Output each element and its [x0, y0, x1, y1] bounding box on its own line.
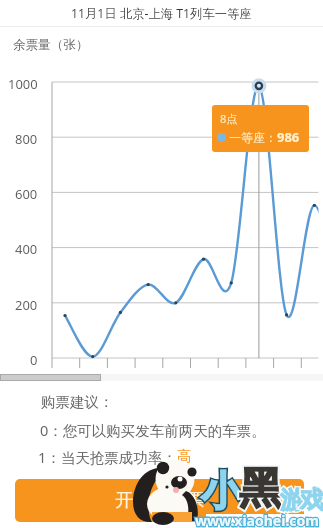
- staticText: 200: [15, 296, 38, 314]
- staticText: 0: [30, 351, 38, 369]
- staticText: 1：当天抢票成功率：: [38, 447, 177, 467]
- staticText: 800: [15, 130, 38, 148]
- button[interactable]: 11月1日 北京-上海 T1列车一等座: [0, 0, 323, 26]
- staticText: 戏: [300, 485, 323, 515]
- staticText: 600: [15, 185, 38, 203]
- staticText: 8点: [220, 111, 238, 126]
- staticText: 游: [280, 485, 304, 515]
- staticText: 0：您可以购买发车前两天的车票。: [40, 420, 266, 440]
- staticText: 黑: [239, 462, 282, 516]
- staticText: 高: [177, 447, 192, 465]
- staticText: 1000: [8, 75, 38, 93]
- staticText: 购票建议：: [41, 393, 114, 411]
- staticText: 余票量（张）: [13, 37, 89, 53]
- staticText: 11月1日 北京-上海 T1列车一等座: [71, 5, 252, 22]
- button[interactable]: 开启云抢票: [15, 479, 304, 522]
- staticText: 一等座：: [229, 130, 277, 145]
- staticText: 小: [201, 466, 241, 516]
- staticText: 开启云抢票: [115, 489, 205, 512]
- staticText: www.xiaohei.com: [195, 511, 319, 528]
- staticText: 黑: [239, 462, 282, 516]
- staticText: 游: [280, 485, 304, 515]
- staticText: 小: [201, 466, 241, 516]
- staticText: 戏: [300, 485, 323, 515]
- staticText: 400: [15, 240, 38, 258]
- staticText: 986: [277, 128, 300, 146]
- staticText: www.xiaohei.com: [195, 511, 319, 528]
